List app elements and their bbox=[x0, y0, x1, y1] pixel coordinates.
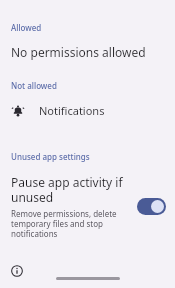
staticText: Allowed bbox=[11, 22, 42, 33]
button[interactable]: Pause app activity if unused toggle bbox=[137, 198, 166, 215]
staticText: Pause app activity if unused bbox=[11, 174, 131, 205]
button[interactable]: No permissions allowed bbox=[0, 42, 175, 62]
other: Information bbox=[11, 265, 23, 277]
button[interactable]: Notifications bbox=[0, 99, 175, 122]
staticText: No permissions allowed bbox=[11, 44, 146, 60]
button[interactable]: Pause app activity if unused bbox=[0, 172, 175, 241]
other: Notifications bbox=[11, 104, 25, 118]
staticText: Notifications bbox=[39, 103, 105, 118]
staticText: Not allowed bbox=[11, 80, 57, 91]
staticText: Unused app settings bbox=[11, 151, 90, 162]
staticText: Remove permissions, delete temporary fil… bbox=[11, 208, 131, 239]
